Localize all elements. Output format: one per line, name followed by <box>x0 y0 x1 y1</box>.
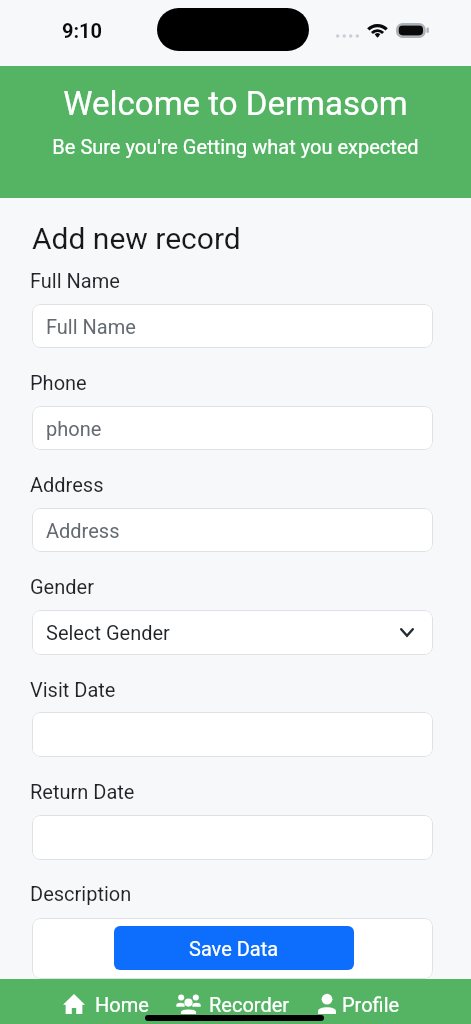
staticText: Gender <box>30 575 94 598</box>
button[interactable]: Profile <box>310 979 439 1024</box>
staticText: Address <box>30 473 104 496</box>
staticText: Be Sure you're Getting what you expected <box>0 135 471 158</box>
staticText: Visit Date <box>30 678 116 701</box>
staticText: Full Name <box>46 315 136 338</box>
staticText: Save Data <box>189 937 279 960</box>
button[interactable]: Address <box>32 508 433 552</box>
staticText: Add new record <box>32 221 241 256</box>
button[interactable]: Return Date <box>32 815 433 860</box>
staticText: Select Gender <box>46 621 170 644</box>
button[interactable]: Visit Date <box>32 712 433 757</box>
button[interactable]: Description <box>32 918 433 979</box>
button[interactable]: Gender <box>32 610 433 655</box>
staticText: phone <box>46 417 102 440</box>
staticText: Recorder <box>209 993 290 1016</box>
button[interactable]: Home <box>55 979 151 1024</box>
staticText: Full Name <box>30 269 120 292</box>
button[interactable]: Phone <box>32 406 433 450</box>
button[interactable]: Save Data <box>114 926 354 970</box>
staticText: Profile <box>342 993 400 1016</box>
staticText: Home <box>95 993 149 1016</box>
staticText: Description <box>30 882 132 905</box>
staticText: Welcome to Dermasom <box>0 84 471 123</box>
staticText: 9:10 <box>62 19 103 42</box>
button[interactable]: Recorder <box>168 979 308 1024</box>
staticText: Return Date <box>30 780 135 803</box>
staticText: Address <box>46 519 120 542</box>
staticText: Phone <box>30 371 87 394</box>
button[interactable]: Full Name <box>32 304 433 348</box>
